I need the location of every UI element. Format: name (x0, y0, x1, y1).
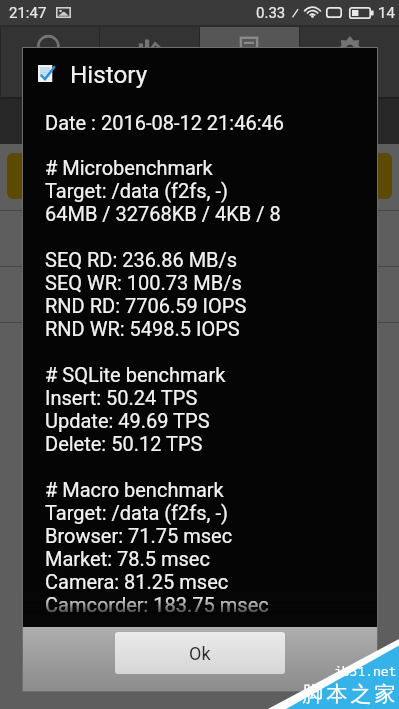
button[interactable]: Search (0, 27, 99, 97)
staticText: 脚本之家 (301, 681, 397, 707)
staticText: Ad Sponsored (224, 102, 345, 124)
other: Search (36, 35, 64, 63)
button[interactable]: Setting (299, 27, 399, 97)
button[interactable]: Ok (115, 632, 285, 674)
staticText: Search (30, 67, 70, 82)
staticText: 21:47 (9, 4, 47, 22)
staticText: Date : 2016-08-12 21:46:46 # Microbenchm… (45, 111, 284, 617)
staticText: 2016-08-12 21:46:46 (47, 283, 231, 306)
staticText: Advertisement Text (224, 124, 362, 143)
staticText: jb51.net (334, 662, 397, 680)
staticText: Ok (189, 643, 211, 664)
button[interactable]: 2016-08-12 21:46:46 (0, 210, 399, 266)
other: History (235, 35, 263, 63)
staticText: 14 (378, 4, 395, 22)
other: Setting (336, 35, 364, 63)
staticText: Result (131, 67, 168, 82)
button[interactable] (7, 153, 392, 199)
staticText: 0.33 (256, 4, 286, 22)
button[interactable]: 2016-08-12 21:46:46 (0, 322, 399, 378)
button[interactable]: Result (99, 27, 199, 97)
other: Result (136, 35, 164, 63)
staticText: History (70, 60, 148, 88)
button[interactable]: Ad Sponsored (0, 99, 399, 144)
button[interactable]: 2016-08-12 21:46:46 (0, 266, 399, 322)
button[interactable]: History (199, 27, 299, 97)
